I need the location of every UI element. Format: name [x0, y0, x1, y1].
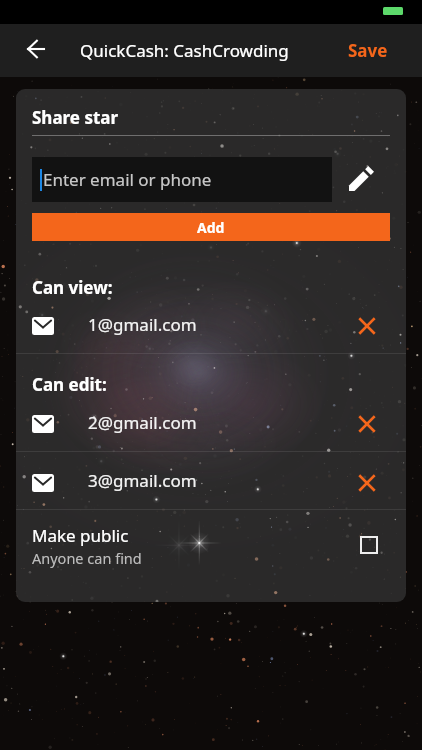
staticText: Save	[348, 39, 388, 62]
button[interactable]: Back	[18, 25, 52, 73]
staticText: Add	[197, 218, 225, 237]
staticText: Enter email or phone	[43, 168, 212, 191]
button[interactable]: Enter email or phone	[32, 157, 332, 202]
button[interactable]: Make public	[16, 510, 406, 602]
button[interactable]: 2@gmail.com	[16, 393, 406, 451]
staticText: 2@gmail.com	[88, 411, 197, 434]
button[interactable]: Add	[32, 213, 390, 241]
button[interactable]: Remove 2@gmail.com	[346, 403, 388, 445]
staticText: Can edit:	[32, 373, 107, 393]
staticText: Share star	[32, 106, 119, 129]
button[interactable]: Edit	[339, 156, 383, 200]
button[interactable]: Remove 1@gmail.com	[346, 305, 388, 347]
staticText: Anyone can find	[32, 548, 142, 568]
button[interactable]: Save	[332, 25, 404, 76]
staticText: Can view:	[32, 276, 113, 295]
staticText: Make public	[32, 524, 129, 547]
button[interactable]: 1@gmail.com	[16, 295, 406, 353]
button[interactable]: Make public	[347, 523, 391, 567]
staticText: 3@gmail.com	[88, 469, 197, 492]
staticText: 1@gmail.com	[88, 313, 197, 336]
button[interactable]: Remove 3@gmail.com	[346, 462, 388, 504]
button[interactable]: 3@gmail.com	[16, 452, 406, 509]
staticText: QuickCash: CashCrowding	[80, 39, 289, 62]
